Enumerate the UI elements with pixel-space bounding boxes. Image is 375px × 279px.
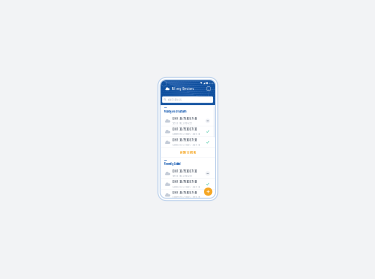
staticText: DHR 38/7930871-38: [172, 190, 197, 195]
staticText: Serial No. 377814739: [172, 174, 191, 178]
staticText: DHR 38/7930871-38: [172, 179, 197, 184]
staticText: DHR 38/7930871-38: [172, 169, 197, 174]
staticText: Recently Added: [164, 161, 180, 166]
button[interactable]: SHOW 12 MORE: [161, 148, 215, 158]
button[interactable]: DHR 38/7930871-38: [161, 137, 215, 148]
staticText: DHR 38/7930871-38: [172, 127, 197, 132]
staticText: Nearby via Bluetooth: [164, 109, 186, 114]
button[interactable]: DHR 38/7930871-38: [161, 189, 215, 200]
button[interactable]: DHR 38/7930871-38: [161, 179, 215, 189]
staticText: Connected 1.2 hours · 38.1% BL: [172, 132, 200, 136]
staticText: Search devices: [168, 97, 182, 102]
button[interactable]: Add device: [204, 187, 212, 196]
button[interactable]: Search devices: [162, 96, 213, 103]
staticText: Connected 1.2 hours · 38.1% BL: [172, 185, 200, 189]
staticText: Connected 1.2 hours · 38.1% BL: [172, 143, 200, 147]
staticText: DHR 38/7930871-38: [172, 138, 197, 143]
button[interactable]: My devices: [206, 86, 211, 91]
staticText: Serial No. 377814739: [172, 121, 191, 125]
staticText: DHR 38/7930871-38: [172, 116, 197, 121]
staticText: SHOW 12 MORE: [180, 150, 196, 155]
staticText: All my Devices: [172, 86, 194, 92]
button[interactable]: DHR 38/7930871-38: [161, 115, 215, 126]
button[interactable]: DHR 38/7930871-38: [161, 126, 215, 137]
button[interactable]: DHR 38/7930871-38: [161, 168, 215, 179]
staticText: Connected 1.2 hours · 38.1% BL: [172, 195, 200, 199]
